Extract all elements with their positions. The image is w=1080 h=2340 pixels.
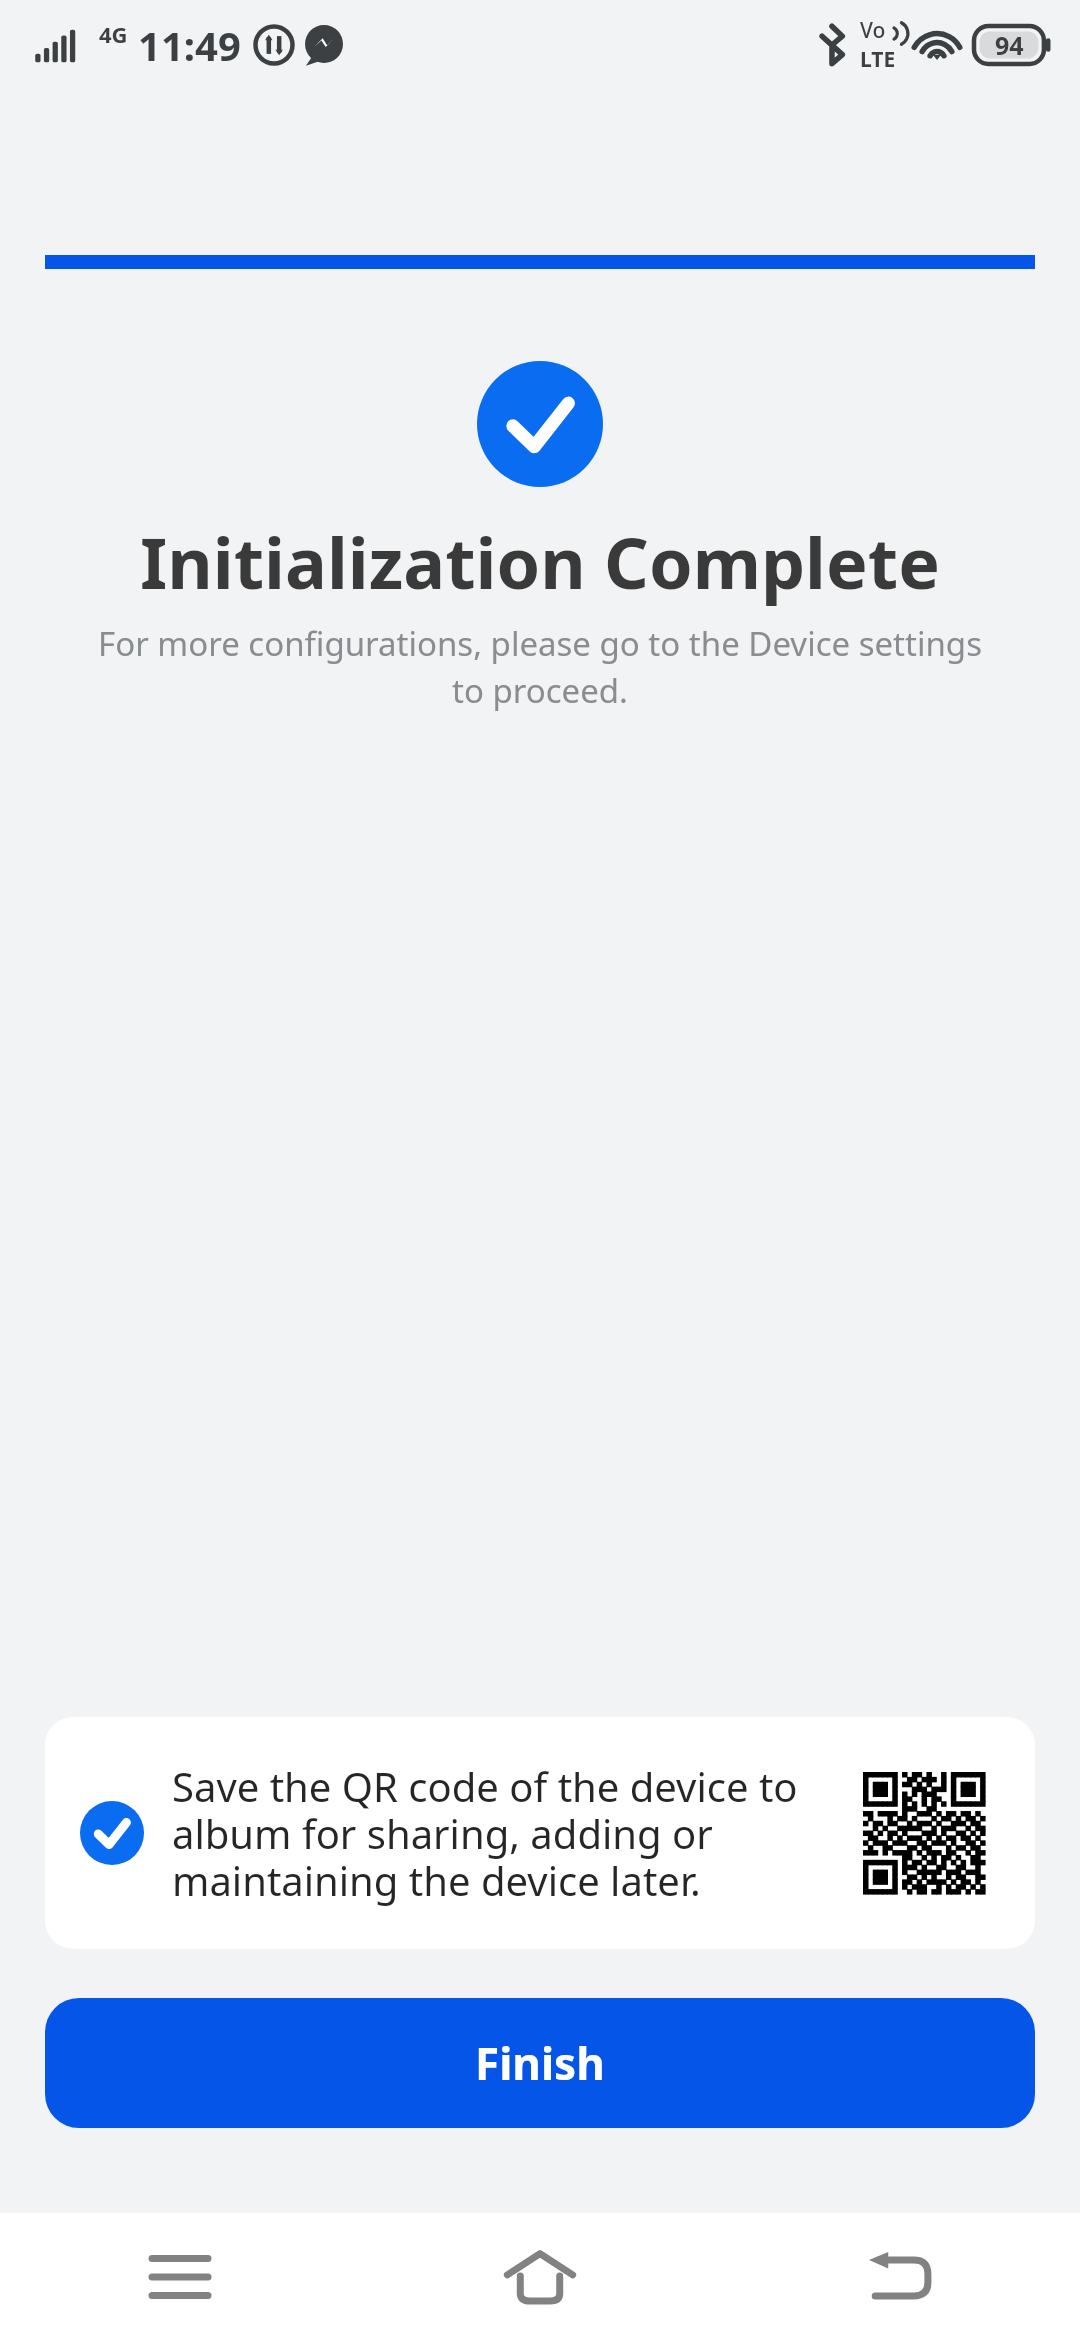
staticText: LTE — [860, 45, 896, 74]
staticText: Vo — [860, 16, 886, 45]
staticText: Finish — [475, 2033, 605, 2093]
staticText: Save the QR code of the device to album … — [172, 1759, 843, 1908]
staticText: For more configurations, please go to th… — [88, 621, 992, 713]
button[interactable]: Home — [360, 2213, 720, 2340]
button[interactable]: Back — [720, 2213, 1080, 2340]
staticText: Initialization Complete — [0, 514, 1080, 609]
staticText: 94 — [995, 28, 1024, 62]
button[interactable]: Recent apps — [0, 2213, 360, 2340]
button[interactable]: Finish — [45, 1998, 1035, 2128]
staticText: 4G — [99, 19, 128, 49]
button[interactable]: Save the QR code of the device to album … — [45, 1717, 1035, 1949]
staticText: 11:49 — [138, 18, 241, 72]
